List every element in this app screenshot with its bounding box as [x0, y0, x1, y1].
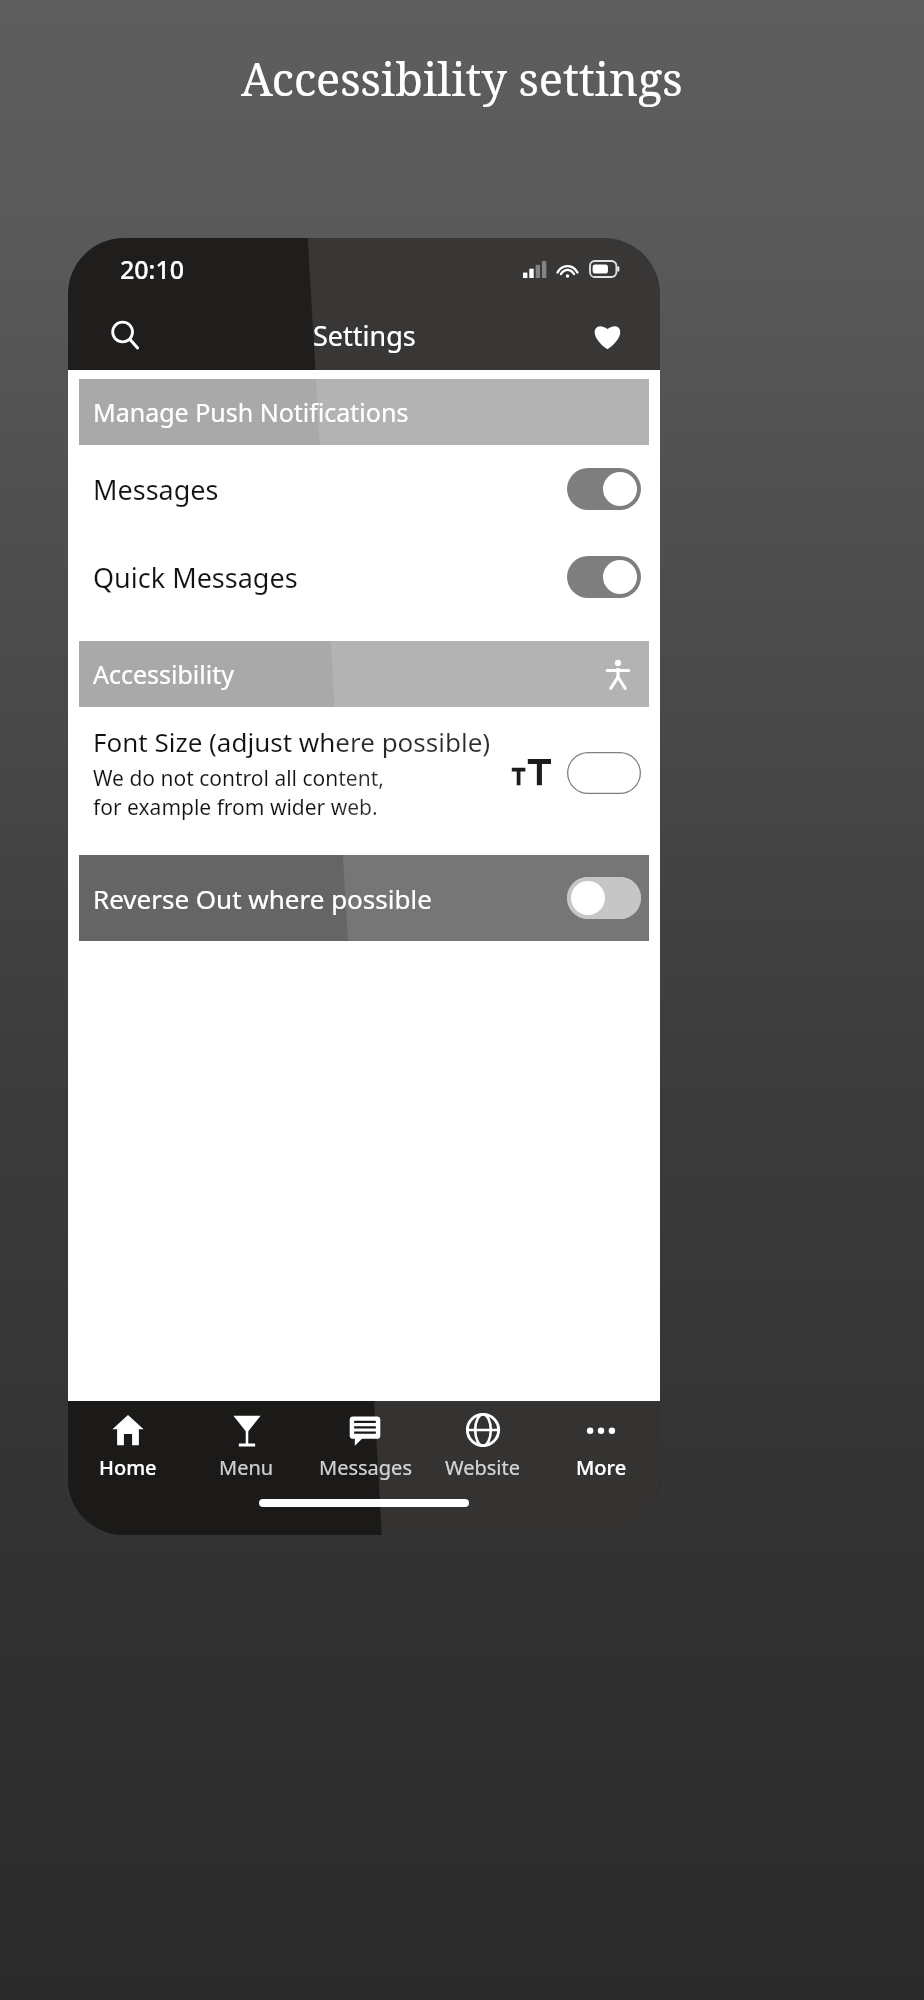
- button[interactable]: Manage Push Notifications: [79, 379, 649, 445]
- staticText: 20:10: [120, 252, 185, 286]
- staticText: More: [576, 1454, 627, 1481]
- staticText: Messages: [93, 471, 567, 508]
- staticText: We do not control all content,: [93, 764, 384, 793]
- staticText: Settings: [313, 317, 416, 354]
- button[interactable]: Reverse Out where possible: [79, 855, 649, 941]
- button[interactable]: Website: [424, 1401, 542, 1493]
- button[interactable]: Menu: [187, 1401, 306, 1493]
- button[interactable]: Accessibility: [79, 641, 649, 707]
- staticText: Manage Push Notifications: [93, 395, 409, 429]
- staticText: for example from wider web.: [93, 793, 378, 822]
- staticText: Accessibility settings: [241, 48, 683, 109]
- button[interactable]: More: [542, 1401, 660, 1493]
- staticText: Reverse Out where possible: [93, 881, 567, 916]
- button[interactable]: Messages: [306, 1401, 424, 1493]
- staticText: Messages: [319, 1454, 412, 1481]
- button[interactable]: Favourites: [578, 306, 636, 364]
- staticText: Font Size (adjust where possible): [93, 724, 491, 759]
- staticText: Accessibility: [93, 657, 234, 691]
- button[interactable]: Home: [68, 1401, 187, 1493]
- button[interactable]: Quick Messages: [79, 533, 649, 621]
- staticText: Quick Messages: [93, 559, 567, 596]
- button[interactable]: Messages: [79, 445, 649, 533]
- button[interactable]: Search: [96, 306, 154, 364]
- staticText: Home: [99, 1454, 157, 1481]
- button[interactable]: Font Size (adjust where possible): [79, 707, 649, 839]
- staticText: Website: [445, 1454, 521, 1481]
- staticText: Menu: [219, 1454, 274, 1481]
